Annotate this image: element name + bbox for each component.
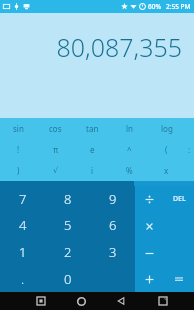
staticText: ln — [126, 123, 134, 134]
staticText: 6 — [109, 216, 117, 234]
staticText: % — [126, 165, 133, 176]
staticText: 60% — [148, 2, 161, 11]
button[interactable]: ln — [111, 118, 148, 139]
staticText: 7 — [19, 190, 27, 208]
button[interactable]: 1 — [0, 238, 45, 265]
button[interactable]: cos — [37, 118, 74, 139]
button[interactable]: DEL — [164, 186, 194, 212]
staticText: 2 — [64, 243, 72, 261]
button[interactable]: √ — [37, 160, 74, 181]
button[interactable]: Home — [70, 292, 92, 310]
button[interactable]: i — [74, 160, 111, 181]
staticText: tan — [86, 123, 99, 134]
button[interactable]: ! — [0, 139, 37, 160]
button[interactable]: 6 — [90, 212, 135, 238]
button[interactable]: Back — [110, 292, 132, 310]
button[interactable]: ^ — [111, 139, 148, 160]
button[interactable]: 0 — [45, 265, 90, 292]
button[interactable]: 8 — [45, 186, 90, 212]
staticText: ) — [17, 165, 20, 176]
staticText: 1 — [19, 243, 27, 261]
button[interactable]: : — [185, 139, 194, 160]
staticText: 5 — [64, 216, 72, 234]
button[interactable]: x — [148, 160, 185, 181]
button[interactable]: 2 — [45, 238, 90, 265]
button[interactable]: e — [74, 139, 111, 160]
staticText: ^ — [127, 144, 132, 155]
staticText: log — [161, 123, 173, 134]
staticText: 2:55 PM — [166, 2, 191, 11]
button[interactable]: + — [135, 267, 164, 292]
button[interactable]: 3 — [90, 238, 135, 265]
button[interactable]: ) — [0, 160, 37, 181]
button[interactable]: Stop — [30, 292, 52, 310]
button[interactable]: 9 — [90, 186, 135, 212]
staticText: DEL — [173, 194, 186, 204]
staticText: x — [164, 165, 169, 176]
staticText: cos — [49, 123, 62, 134]
button[interactable]: 7 — [0, 186, 45, 212]
staticText: √ — [53, 166, 59, 175]
staticText: ( — [165, 144, 168, 155]
staticText: 9 — [109, 190, 117, 208]
staticText: 80,087,355 — [56, 30, 182, 64]
button[interactable]: log — [148, 118, 185, 139]
button[interactable]: 5 — [45, 212, 90, 238]
button[interactable]: Equals — [164, 265, 194, 292]
staticText: 8 — [64, 190, 72, 208]
button[interactable]: sin — [0, 118, 37, 139]
staticText: sin — [13, 123, 24, 134]
button[interactable]: . — [0, 265, 45, 292]
button[interactable]: % — [111, 160, 148, 181]
staticText: : — [188, 144, 191, 155]
staticText: i — [91, 165, 94, 176]
staticText: 3 — [109, 243, 117, 261]
staticText: ! — [17, 144, 20, 155]
staticText: e — [90, 144, 95, 155]
button[interactable]: ÷ — [135, 186, 164, 213]
button[interactable]: ( — [148, 139, 185, 160]
button[interactable]: Recent apps — [152, 292, 174, 310]
staticText: . — [21, 270, 25, 288]
button[interactable]: × — [135, 213, 164, 240]
staticText: π — [53, 144, 59, 155]
staticText: 0 — [64, 270, 72, 288]
button[interactable]: tan — [74, 118, 111, 139]
button[interactable]: − — [135, 240, 164, 267]
button[interactable]: π — [37, 139, 74, 160]
staticText: 4 — [19, 216, 27, 234]
button[interactable]: 4 — [0, 212, 45, 238]
